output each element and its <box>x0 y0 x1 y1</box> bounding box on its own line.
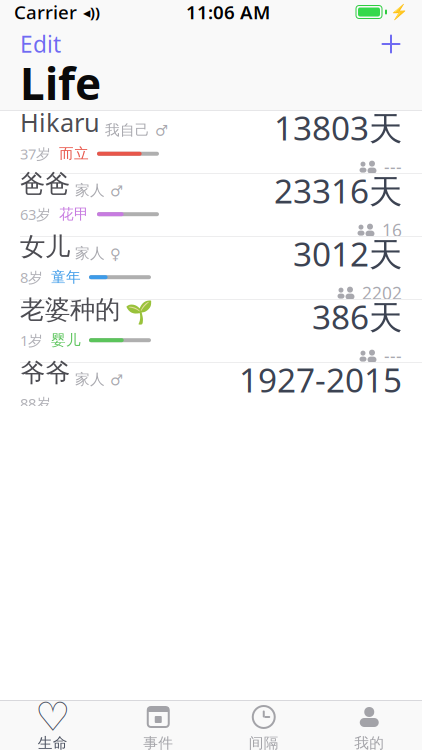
staticText: ⚡ <box>390 4 408 20</box>
staticText: 事件 <box>143 734 173 750</box>
staticText: 1岁 <box>20 330 43 350</box>
staticText: 11:06 AM <box>186 0 270 24</box>
staticText: 爸爸 <box>20 168 70 199</box>
staticText: Edit <box>20 29 61 59</box>
staticText: 家人 <box>75 370 105 388</box>
staticText: 🌱 <box>125 300 153 325</box>
staticText: 88岁 <box>20 393 51 413</box>
staticText: 63岁 <box>20 204 51 224</box>
staticText: 我自己 <box>105 121 150 139</box>
staticText: 家人 <box>75 181 105 199</box>
staticText: ♂ <box>155 122 168 139</box>
staticText: ♡ <box>35 694 71 740</box>
button[interactable]: 爷爷 <box>0 363 422 426</box>
staticText: 37岁 <box>20 144 51 163</box>
staticText: 婴儿 <box>51 331 81 349</box>
staticText: 童年 <box>51 268 81 286</box>
button[interactable]: Edit <box>16 25 65 63</box>
button[interactable]: Add <box>376 29 406 59</box>
button[interactable]: 间隔 <box>211 699 316 750</box>
staticText: ♂ <box>110 372 123 388</box>
staticText: 16 <box>382 219 402 242</box>
button[interactable]: ♡ <box>0 699 105 750</box>
staticText: 生命 <box>38 734 68 750</box>
button[interactable]: 老婆种的 <box>0 300 422 363</box>
staticText: 3012天 <box>293 231 402 276</box>
staticText: 13803天 <box>274 105 402 150</box>
staticText: 花甲 <box>59 205 89 223</box>
button[interactable]: 女儿 <box>0 237 422 300</box>
button[interactable]: 事件 <box>105 699 211 750</box>
staticText: ♀ <box>110 246 121 262</box>
staticText: 老婆种的 <box>20 294 120 325</box>
staticText: --- <box>384 156 402 179</box>
staticText: 2202 <box>362 282 402 305</box>
staticText: 而立 <box>59 145 89 163</box>
staticText: 我的 <box>354 734 384 750</box>
staticText: ◂)) <box>83 2 100 22</box>
staticText: 1927-2015 <box>239 357 402 402</box>
staticText: 爷爷 <box>20 357 70 388</box>
staticText: --- <box>384 345 402 368</box>
staticText: Carrier <box>14 0 77 24</box>
staticText: 家人 <box>75 244 105 262</box>
staticText: Hikaru <box>20 105 100 139</box>
button[interactable]: Hikaru <box>0 111 422 174</box>
button[interactable]: 我的 <box>316 699 422 750</box>
staticText: 23316天 <box>274 168 402 213</box>
staticText: ♂ <box>110 183 123 199</box>
staticText: 8岁 <box>20 267 43 287</box>
button[interactable]: 爸爸 <box>0 174 422 237</box>
staticText: 间隔 <box>249 734 279 750</box>
staticText: Life <box>20 54 101 112</box>
staticText: 女儿 <box>20 231 70 262</box>
staticText: 386天 <box>312 294 402 339</box>
